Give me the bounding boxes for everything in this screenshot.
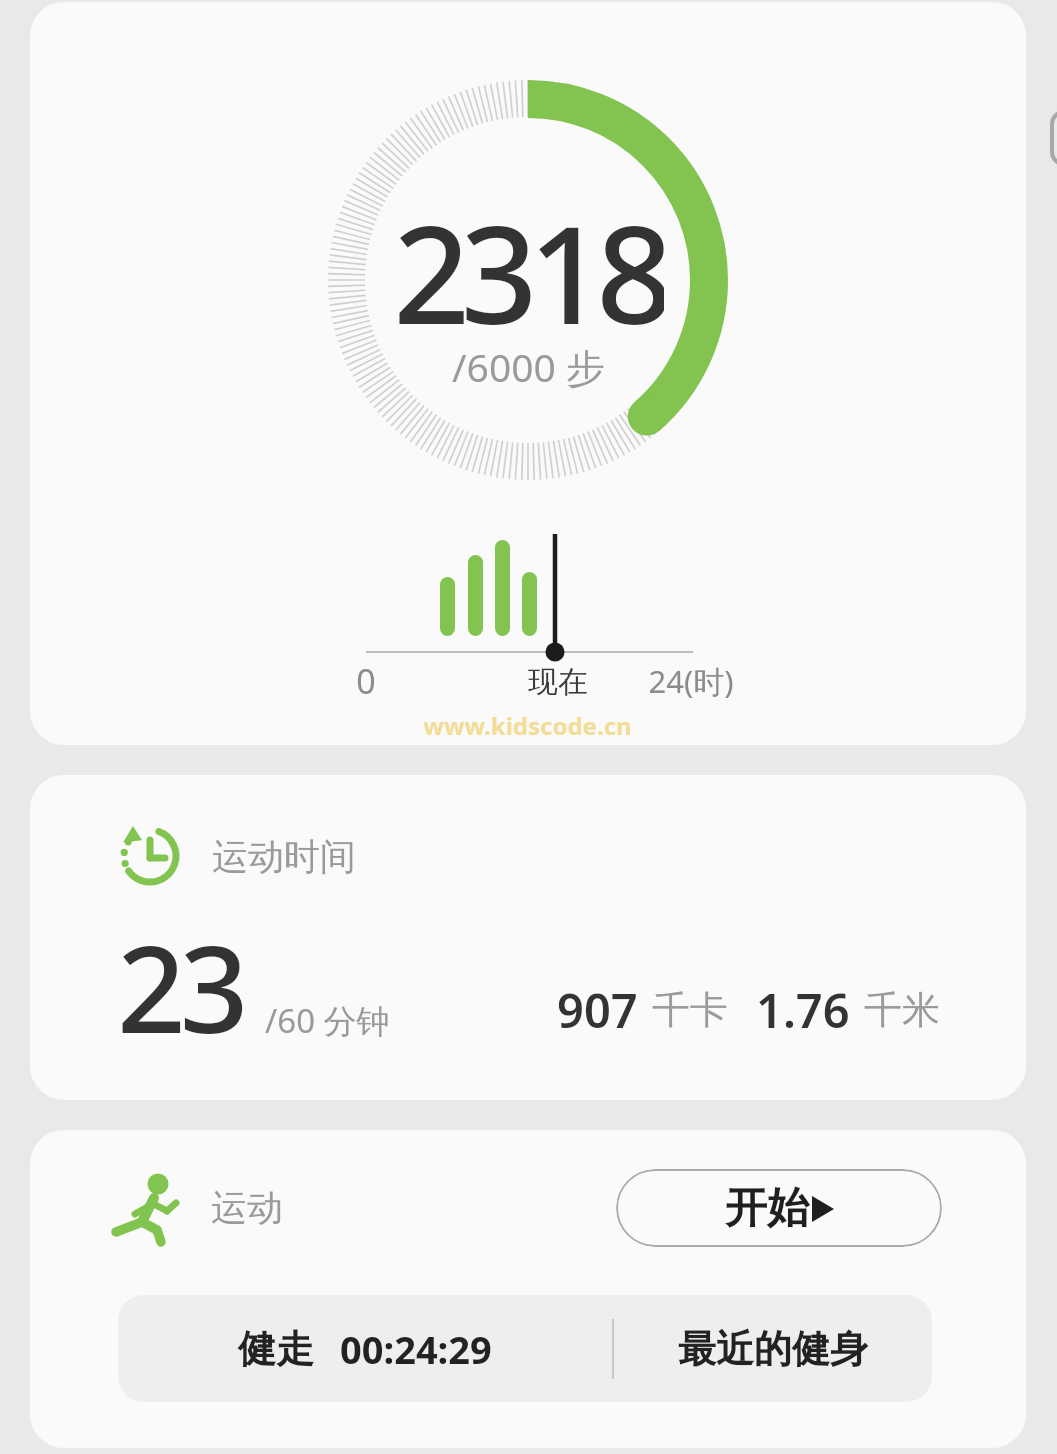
button[interactable]: 开始 [616, 1169, 942, 1247]
staticText: 运动时间 [212, 834, 356, 878]
staticText: 00:24:29 [340, 1323, 492, 1375]
staticText: /6000 步 [452, 340, 605, 393]
staticText: 开始 [725, 1182, 809, 1235]
staticText: /60 分钟 [265, 998, 390, 1043]
staticText: 24(时) [648, 660, 734, 702]
staticText: 23 [117, 905, 243, 1068]
staticText: 最近的健身 [678, 1325, 868, 1373]
staticText: 907 [557, 978, 638, 1042]
button[interactable]: 健走 [118, 1295, 612, 1402]
staticText: www.kidscode.cn [423, 709, 632, 742]
staticText: 0 [356, 658, 376, 704]
staticText: 运动 [211, 1185, 283, 1229]
staticText: 千米 [864, 986, 940, 1034]
button[interactable]: 最近的健身 [614, 1295, 932, 1402]
staticText: 1.76 [756, 978, 850, 1042]
staticText: 2318 [393, 181, 664, 361]
staticText: 千卡 [652, 986, 728, 1034]
button[interactable] [30, 775, 1026, 1100]
staticText: 健走 [238, 1325, 314, 1373]
button[interactable] [30, 2, 1026, 745]
button[interactable] [30, 1130, 1026, 1448]
staticText: 现在 [528, 663, 588, 701]
